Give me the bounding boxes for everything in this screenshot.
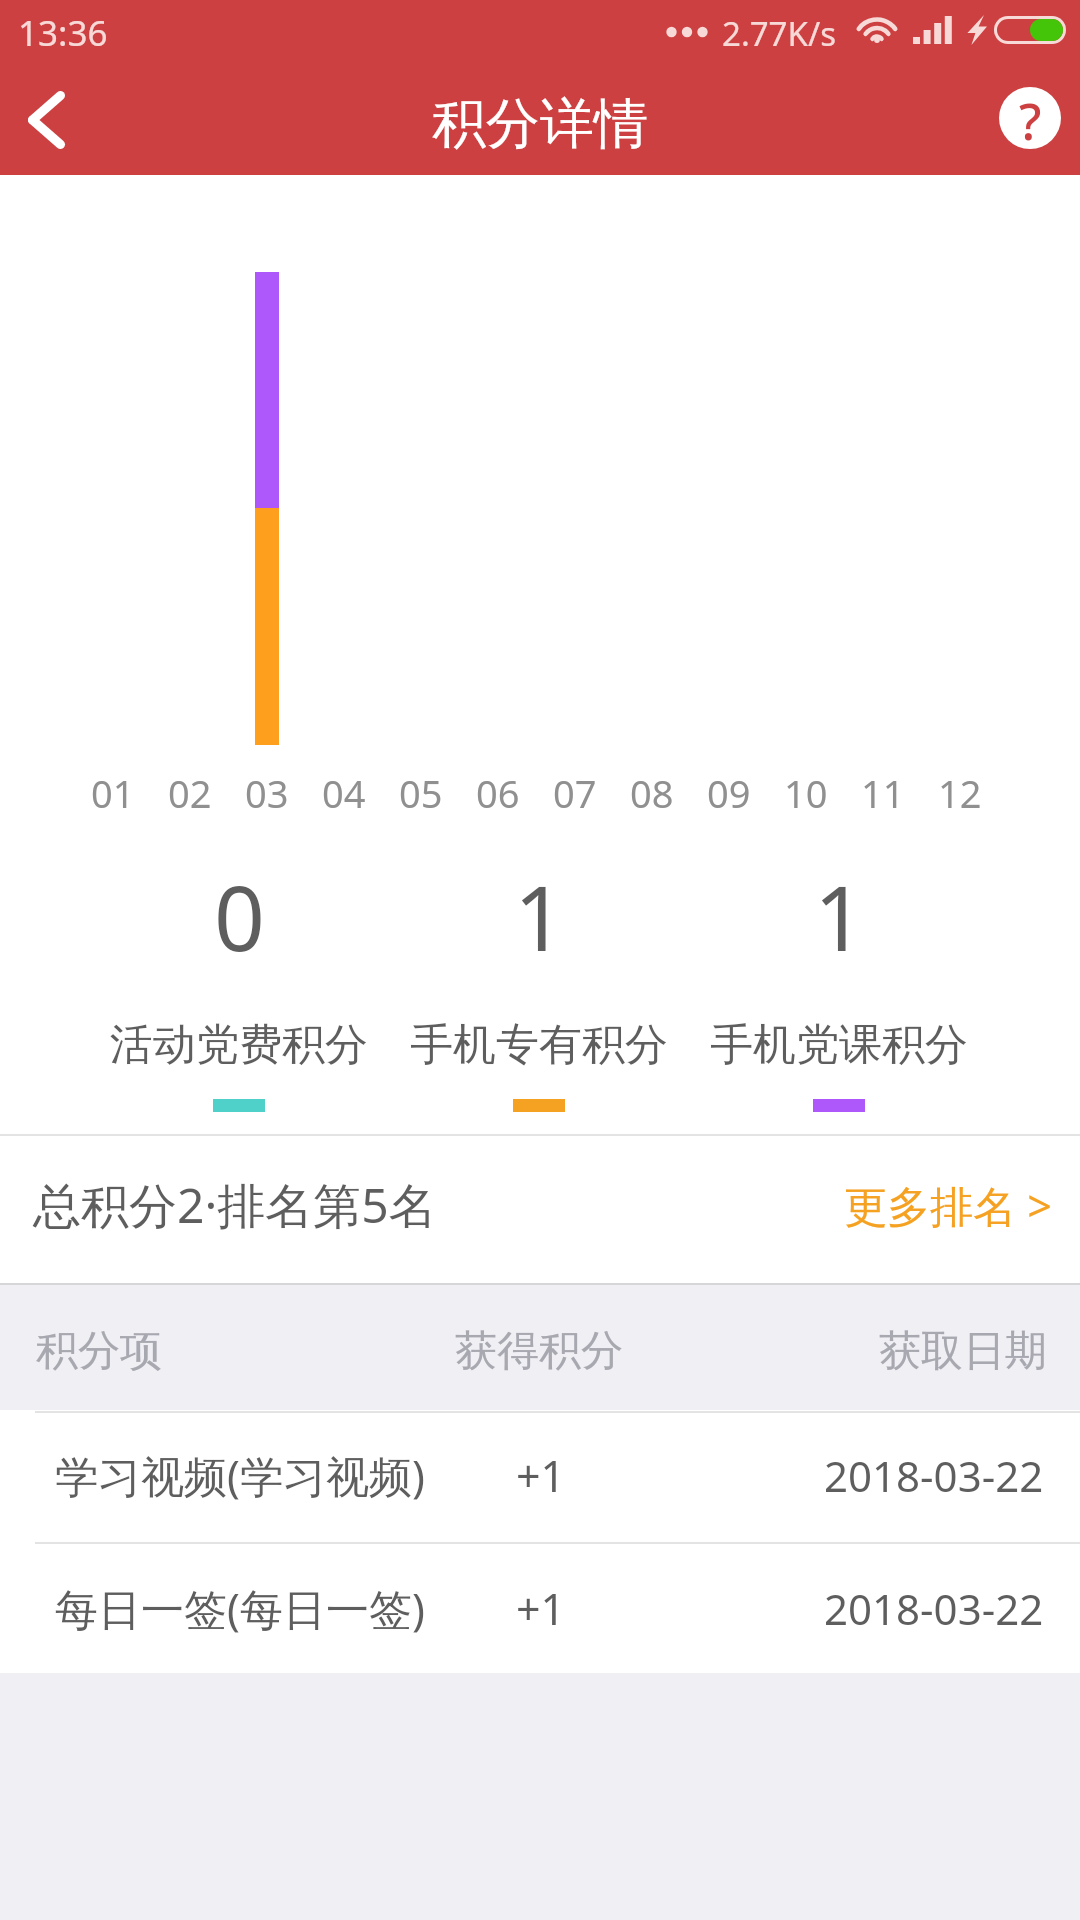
staticText: 05 — [399, 767, 443, 819]
staticText: 06 — [476, 767, 520, 819]
button[interactable]: 0 — [89, 856, 389, 1106]
staticText: 更多排名 > — [844, 1176, 1052, 1235]
button[interactable]: 1 — [389, 856, 689, 1106]
button[interactable]: Help — [999, 87, 1061, 149]
staticText: 获得积分 — [455, 1325, 623, 1378]
staticText: 01 — [91, 767, 135, 819]
button[interactable]: 1 — [689, 856, 989, 1106]
staticText: 总积分2·排名第5名 — [33, 1172, 437, 1238]
staticText: 13:36 — [18, 9, 108, 57]
staticText: 02 — [168, 767, 212, 819]
staticText: +1 — [516, 1579, 566, 1638]
button[interactable]: 每日一签(每日一签) — [0, 1543, 1080, 1674]
staticText: 11 — [861, 767, 905, 819]
staticText: 0 — [214, 856, 265, 966]
staticText: 10 — [784, 767, 828, 819]
staticText: 获取日期 — [879, 1325, 1047, 1378]
staticText: 积分项 — [36, 1325, 162, 1378]
staticText: 2018-03-22 — [824, 1447, 1044, 1504]
staticText: 2.77K/s — [722, 11, 836, 56]
staticText: 活动党费积分 — [110, 1018, 368, 1072]
staticText: ? — [1019, 87, 1042, 149]
staticText: 04 — [322, 767, 366, 819]
staticText: 手机专有积分 — [410, 1018, 668, 1072]
staticText: 每日一签(每日一签) — [55, 1579, 425, 1638]
button[interactable]: Back — [0, 74, 92, 166]
staticText: 1 — [514, 856, 565, 966]
staticText: 03 — [245, 767, 289, 819]
staticText: 1 — [814, 856, 865, 966]
staticText: 2018-03-22 — [824, 1580, 1044, 1637]
staticText: 09 — [707, 767, 751, 819]
staticText: 08 — [630, 767, 674, 819]
staticText: 07 — [553, 767, 597, 819]
staticText: 学习视频(学习视频) — [55, 1446, 425, 1505]
button[interactable]: 总积分2·排名第5名 — [0, 1131, 1080, 1279]
staticText: +1 — [516, 1446, 566, 1505]
staticText: 积分详情 — [432, 90, 648, 158]
staticText: 手机党课积分 — [710, 1018, 968, 1072]
button[interactable]: 学习视频(学习视频) — [0, 1410, 1080, 1541]
staticText: 12 — [938, 767, 982, 819]
